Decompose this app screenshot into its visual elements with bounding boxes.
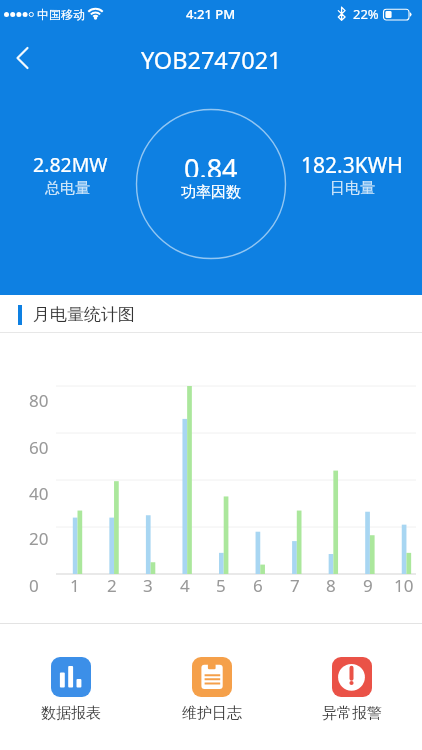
button[interactable]: 异常报警	[282, 624, 422, 750]
staticText: 0	[29, 574, 39, 596]
staticText: 60	[29, 436, 49, 458]
staticText: 9	[363, 574, 373, 596]
staticText: 月电量统计图	[33, 304, 135, 325]
staticText: 4:21 PM	[186, 5, 236, 23]
staticText: 3	[143, 574, 153, 596]
button[interactable]: 维护日志	[141, 624, 282, 750]
staticText: 8	[326, 574, 336, 596]
staticText: 2.82MW	[33, 151, 108, 175]
staticText: 5	[216, 574, 226, 596]
staticText: 0.84	[184, 150, 238, 177]
staticText: 功率因数	[181, 183, 241, 201]
staticText: 数据报表	[41, 704, 101, 723]
staticText: YOB2747021	[141, 44, 282, 72]
staticText: 中国移动	[37, 7, 85, 22]
staticText: 10	[394, 574, 414, 596]
staticText: 1	[70, 574, 80, 596]
staticText: 182.3KWH	[301, 151, 403, 175]
staticText: 4	[180, 574, 190, 596]
staticText: 总电量	[45, 179, 90, 198]
button[interactable]	[0, 32, 52, 84]
staticText: 异常报警	[322, 704, 382, 723]
staticText: 40	[29, 482, 49, 504]
button[interactable]: 数据报表	[0, 624, 141, 750]
staticText: 日电量	[330, 179, 375, 198]
staticText: 80	[29, 389, 49, 411]
staticText: 20	[29, 527, 49, 549]
staticText: 2	[107, 574, 117, 596]
staticText: 6	[253, 574, 263, 596]
staticText: 维护日志	[182, 704, 242, 723]
staticText: 7	[290, 574, 300, 596]
staticText: 22%	[353, 5, 379, 23]
